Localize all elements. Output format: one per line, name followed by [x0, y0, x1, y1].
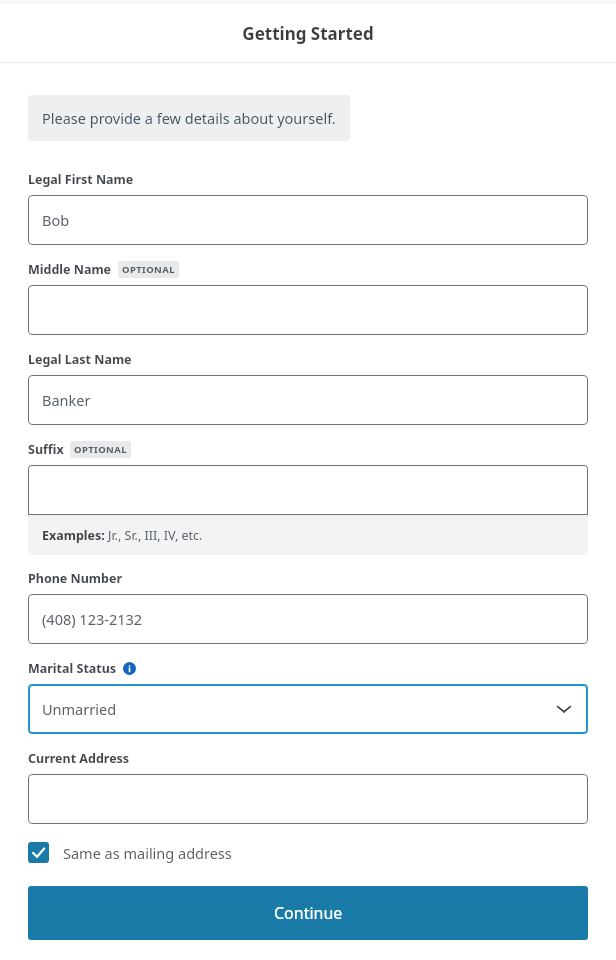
- button[interactable]: Banker: [28, 375, 588, 425]
- button[interactable]: Unmarried: [28, 684, 588, 734]
- button[interactable]: [28, 465, 588, 515]
- button[interactable]: [28, 774, 588, 824]
- button[interactable]: [28, 285, 588, 335]
- button[interactable]: More information: [123, 662, 136, 675]
- staticText: Bob: [42, 210, 70, 230]
- staticText: Suffix: [28, 441, 64, 458]
- staticText: (408) 123-2132: [42, 609, 143, 629]
- staticText: Continue: [274, 902, 343, 924]
- staticText: Banker: [42, 390, 91, 410]
- staticText: Middle Name: [28, 261, 112, 278]
- staticText: Please provide a few details about yours…: [42, 108, 336, 128]
- staticText: OPTIONAL: [74, 443, 127, 456]
- button[interactable]: (408) 123-2132: [28, 594, 588, 644]
- staticText: OPTIONAL: [122, 263, 175, 276]
- staticText: Legal Last Name: [28, 351, 132, 368]
- button[interactable]: Same as mailing address: [28, 842, 232, 863]
- staticText: Getting Started: [242, 22, 374, 45]
- staticText: Current Address: [28, 750, 130, 767]
- button[interactable]: Continue: [28, 886, 588, 940]
- staticText: Marital Status: [28, 660, 117, 677]
- button[interactable]: Bob: [28, 195, 588, 245]
- staticText: Legal First Name: [28, 171, 134, 188]
- staticText: Same as mailing address: [63, 843, 232, 863]
- staticText: Examples: Jr., Sr., III, IV, etc.: [42, 527, 203, 544]
- staticText: Phone Number: [28, 570, 122, 587]
- staticText: Unmarried: [42, 699, 117, 719]
